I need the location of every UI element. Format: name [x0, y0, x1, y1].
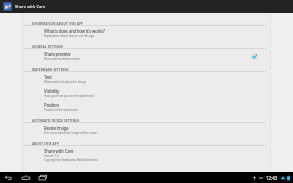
button[interactable]: Text [23, 72, 270, 86]
staticText: Version 1.0 [44, 154, 59, 158]
staticText: 12:43 [266, 175, 278, 181]
button[interactable]: Toggle share preview [252, 54, 257, 59]
button[interactable]: Visibility [23, 86, 270, 100]
staticText: Copyright by Stepbystep MobileSolutions [44, 158, 98, 162]
button[interactable]: What is does and how it's works? [23, 26, 270, 40]
button[interactable]: Resize image [23, 123, 270, 137]
staticText: What is does and how it's works? [44, 28, 105, 34]
other: USB connected [253, 175, 256, 181]
button[interactable]: Home [21, 172, 31, 183]
staticText: How good can you see the watermark [44, 94, 94, 98]
staticText: ABOUT THIS APP [32, 142, 59, 146]
staticText: Share with Care [15, 4, 46, 10]
staticText: Visibility [44, 88, 59, 94]
staticText: Text [44, 74, 52, 80]
staticText: AUTOMATIC RESIZE SETTINGS [32, 119, 80, 123]
button[interactable]: Recent apps [38, 172, 48, 183]
staticText: Watermark text placed in image [44, 80, 86, 84]
staticText: GENERAL SETTINGS [32, 45, 64, 49]
staticText: Resize image [44, 125, 69, 131]
button[interactable]: Back [4, 172, 14, 183]
staticText: Share preview [44, 51, 71, 57]
staticText: The scene which the image will be resize [44, 131, 97, 135]
button[interactable]: App icon [3, 2, 12, 11]
button[interactable]: Share preview [23, 49, 270, 63]
staticText: INFORMATION ABOUT THIS APP [32, 22, 84, 26]
staticText: Position [44, 102, 59, 108]
button[interactable]: Position [23, 100, 270, 114]
staticText: Share with Care [44, 148, 74, 154]
staticText: Position of the watermark [44, 108, 79, 112]
button[interactable]: Share with Care [23, 146, 270, 168]
staticText: Explanation about how to use this app [44, 34, 95, 38]
staticText: WATERMARK SETTINGS [32, 68, 69, 72]
staticText: Show preview before share [44, 57, 80, 61]
